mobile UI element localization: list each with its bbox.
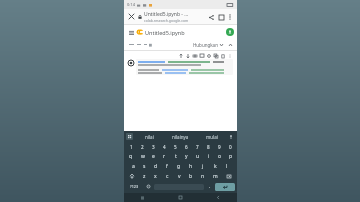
button[interactable]: Expand [226,41,234,49]
staticText: 8 [207,144,210,150]
button[interactable]: o [214,151,225,161]
button[interactable]: j [197,161,209,171]
button[interactable]: mulai [196,131,227,142]
staticText: 7 [196,144,199,150]
staticText: 5 [174,144,177,150]
button[interactable]: Recents [124,193,161,202]
button[interactable]: 5 [170,142,181,151]
button[interactable]: y [181,151,192,161]
staticText: n [201,173,205,180]
staticText: 2 [141,144,144,150]
button[interactable]: More [226,52,233,59]
button[interactable]: u [192,151,203,161]
button[interactable] [136,59,233,75]
staticText: s [143,163,146,170]
button[interactable]: r [159,151,170,161]
button[interactable]: l [221,161,233,171]
button[interactable]: p [225,151,236,161]
staticText: t [175,153,177,160]
button[interactable]: z [139,171,150,181]
staticText: 3 [152,144,155,150]
button[interactable]: Emoji and settings [126,133,133,140]
button[interactable]: Copy [212,52,219,59]
staticText: b [189,173,193,180]
button[interactable]: 9 [214,142,225,151]
button[interactable]: 7 [192,142,203,151]
button[interactable]: Backspace [221,171,236,181]
button[interactable]: b [185,171,197,181]
staticText: 0:14 [127,2,135,7]
staticText: a [132,163,135,170]
staticText: f [166,163,168,170]
staticText: i [208,153,210,160]
button[interactable]: Settings [205,52,212,59]
button[interactable]: e [148,151,159,161]
button[interactable]: Back [199,193,237,202]
button[interactable]: Move up [177,52,184,59]
button[interactable]: Shift [125,171,139,181]
button[interactable]: 8 [203,142,214,151]
staticText: Untitled5.ipynb [145,29,226,36]
button[interactable]: Menu item [135,41,142,48]
button[interactable]: Close [127,12,136,21]
button[interactable]: 6 [181,142,192,151]
button[interactable]: v [173,171,185,181]
button[interactable]: 2 [137,142,148,151]
button[interactable]: Emoji [143,181,154,192]
staticText: 0 [229,144,232,150]
button[interactable]: 0 [225,142,236,151]
button[interactable]: x [150,171,161,181]
button[interactable]: 4 [159,142,170,151]
staticText: c [166,173,169,180]
staticText: l [226,163,228,170]
button[interactable]: Menu [127,28,136,37]
button[interactable]: Share [206,12,216,22]
button[interactable]: Run cell [128,60,134,66]
button[interactable]: 1 [125,142,137,151]
staticText: ?123 [130,184,139,189]
button[interactable]: Comment [198,52,205,59]
button[interactable]: i [203,151,214,161]
staticText: m [213,173,218,180]
button[interactable]: f [161,161,173,171]
staticText: j [202,163,204,170]
staticText: h [189,163,193,170]
button[interactable]: nilainya [165,131,196,142]
button[interactable]: Delete [219,52,226,59]
button[interactable]: Menu item [127,41,135,48]
staticText: Hubungkan [193,42,218,48]
button[interactable]: h [185,161,197,171]
button[interactable]: ?123 [126,181,143,192]
button[interactable]: m [209,171,221,181]
button[interactable]: q [125,151,137,161]
staticText: 9 [218,144,221,150]
staticText: nilai [145,134,154,140]
staticText: mulai [206,134,218,140]
button[interactable]: Link [191,52,198,59]
button[interactable]: Move down [184,52,191,59]
button[interactable]: 3 [148,142,159,151]
staticText: nilainya [172,134,189,140]
button[interactable]: n [197,171,209,181]
button[interactable]: Tabs [216,12,226,22]
button[interactable]: Menu item [142,41,148,48]
button[interactable]: More options [226,13,234,21]
button[interactable]: nilai [133,131,165,142]
button[interactable]: d [150,161,161,171]
button[interactable]: Enter [215,183,235,191]
button[interactable]: k [209,161,221,171]
button[interactable]: Voice input [227,133,235,141]
button[interactable]: a [128,161,139,171]
button[interactable]: w [137,151,148,161]
staticText: q [129,153,133,160]
staticText: r [163,153,166,160]
button[interactable]: Hubungkan [192,40,224,49]
button[interactable]: t [170,151,181,161]
button[interactable]: . [204,181,215,192]
button[interactable]: Home [161,193,199,202]
button[interactable]: g [173,161,185,171]
button[interactable]: c [161,171,173,181]
button[interactable]: s [139,161,150,171]
button[interactable]: Account [226,28,234,36]
